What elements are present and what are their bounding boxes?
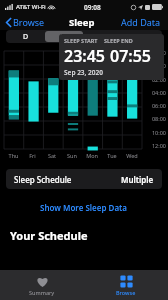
staticText: Sun bbox=[62, 152, 82, 159]
staticText: Tue bbox=[102, 152, 122, 159]
staticText: Multiple bbox=[121, 174, 154, 185]
staticText: M bbox=[99, 32, 106, 42]
staticText: Show More Sleep Data bbox=[40, 202, 128, 213]
staticText: Fri bbox=[23, 152, 42, 159]
staticText: D bbox=[23, 32, 29, 42]
button[interactable]: Add Data bbox=[119, 14, 163, 30]
staticText: Sat bbox=[42, 152, 62, 159]
other: Summary bbox=[36, 275, 49, 288]
staticText: Thu bbox=[4, 152, 23, 159]
staticText: Browse bbox=[13, 16, 45, 28]
staticText: 23:45 bbox=[64, 45, 106, 67]
staticText: 04:00 bbox=[142, 89, 166, 96]
button[interactable]: Y bbox=[122, 31, 161, 42]
staticText: Add Data bbox=[121, 16, 161, 28]
staticText: Wed bbox=[122, 152, 142, 159]
staticText: SLEEP END bbox=[104, 37, 133, 44]
staticText: Sleep Schedule bbox=[14, 174, 72, 185]
staticText: 00:00 bbox=[142, 62, 166, 69]
staticText: Browse bbox=[116, 289, 136, 296]
staticText: Sep 23, 2020 bbox=[64, 68, 103, 77]
staticText: 07:55 bbox=[110, 45, 152, 67]
staticText: 02:00 bbox=[142, 76, 166, 83]
button[interactable]: W bbox=[45, 31, 83, 42]
button[interactable]: Browse bbox=[5, 15, 46, 29]
button[interactable]: D bbox=[7, 31, 45, 42]
staticText: 12:00 bbox=[142, 142, 166, 149]
staticText: Y bbox=[140, 32, 144, 42]
staticText: Summary bbox=[29, 289, 55, 296]
staticText: Sleep bbox=[69, 16, 95, 29]
button[interactable]: Show More Sleep Data bbox=[0, 199, 168, 216]
staticText: 08:00 bbox=[142, 115, 166, 122]
other: Browse bbox=[120, 275, 133, 288]
button[interactable]: Summary bbox=[0, 270, 84, 300]
button[interactable]: Sleep Schedule bbox=[6, 169, 162, 189]
staticText: 10:00 bbox=[142, 129, 166, 136]
button[interactable]: Browse bbox=[84, 270, 168, 300]
staticText: 09:08 bbox=[84, 3, 101, 12]
staticText: Your Schedule bbox=[10, 228, 88, 243]
staticText: 22:00 bbox=[142, 49, 166, 56]
staticText: W bbox=[61, 32, 68, 42]
button[interactable]: M bbox=[83, 31, 122, 42]
staticText: AT&T Wi-Fi bbox=[16, 3, 46, 11]
staticText: Mon bbox=[82, 152, 102, 159]
staticText: 06:00 bbox=[142, 102, 166, 109]
staticText: SLEEP START bbox=[64, 37, 98, 44]
